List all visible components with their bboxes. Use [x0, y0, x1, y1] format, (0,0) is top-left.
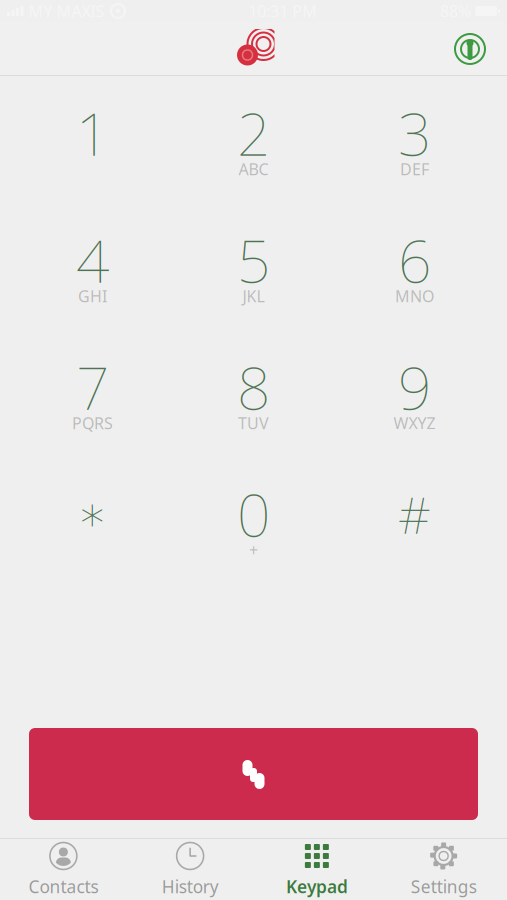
button[interactable]: 2 [173, 100, 334, 186]
button[interactable]: Settings [380, 839, 507, 899]
staticText: Keypad [286, 875, 348, 898]
button[interactable]: # [334, 481, 495, 567]
staticText: 4 [76, 221, 109, 299]
staticText: JKL [242, 285, 264, 307]
staticText: DEF [400, 158, 429, 180]
button[interactable]: 5 [173, 227, 334, 313]
staticText: # [398, 480, 431, 548]
staticText: TUV [238, 412, 269, 434]
staticText: ABC [238, 158, 268, 180]
staticText: 5 [237, 221, 270, 299]
button[interactable]: ∗ [12, 481, 173, 567]
staticText: 1 [76, 94, 109, 172]
button[interactable]: 0 [173, 481, 334, 567]
staticText: 0 [237, 475, 270, 553]
staticText: MNO [395, 285, 434, 307]
staticText: 8 [237, 348, 270, 426]
button[interactable]: History [127, 839, 254, 899]
button[interactable]: Broadcast [447, 26, 493, 72]
staticText: + [249, 539, 258, 561]
button[interactable]: 3 [334, 100, 495, 186]
staticText: History [162, 875, 219, 898]
button[interactable]: Call [29, 728, 478, 820]
button[interactable]: 6 [334, 227, 495, 313]
button[interactable]: 4 [12, 227, 173, 313]
button[interactable]: Keypad [253, 839, 380, 899]
staticText: 9 [398, 348, 431, 426]
staticText: 2 [237, 94, 270, 172]
staticText: WXYZ [393, 412, 435, 434]
button[interactable]: Contacts [0, 839, 127, 899]
staticText: 6 [398, 221, 431, 299]
staticText: 3 [398, 94, 431, 172]
button[interactable]: 8 [173, 354, 334, 440]
button[interactable]: 1 [12, 100, 173, 186]
staticText: 7 [76, 348, 109, 426]
staticText: ∗ [77, 487, 107, 541]
staticText: Contacts [28, 875, 98, 898]
staticText: GHI [78, 285, 107, 307]
button[interactable]: 9 [334, 354, 495, 440]
button[interactable]: 7 [12, 354, 173, 440]
staticText: Settings [411, 875, 477, 898]
staticText: PQRS [72, 412, 113, 434]
